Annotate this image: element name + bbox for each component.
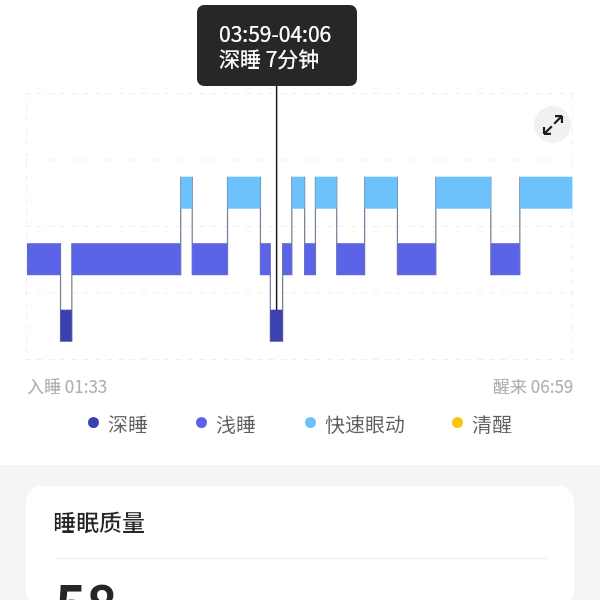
staticText: 清醒: [472, 409, 512, 435]
staticText: 浅睡: [216, 409, 256, 435]
button[interactable]: 浅睡: [196, 409, 247, 435]
staticText: 入睡 01:33: [27, 373, 108, 398]
button[interactable]: 快速眼动: [305, 409, 396, 435]
button[interactable]: 深睡: [88, 409, 139, 435]
staticText: 深睡 7分钟: [219, 43, 320, 73]
button[interactable]: 清醒: [452, 409, 503, 435]
staticText: 深睡: [108, 409, 148, 435]
staticText: 睡眠质量: [53, 504, 145, 537]
staticText: 58: [55, 564, 118, 600]
staticText: 快速眼动: [325, 409, 405, 435]
staticText: 醒来 06:59: [493, 373, 574, 398]
staticText: 03:59-04:06: [219, 18, 332, 48]
button[interactable]: Expand chart: [534, 106, 571, 143]
